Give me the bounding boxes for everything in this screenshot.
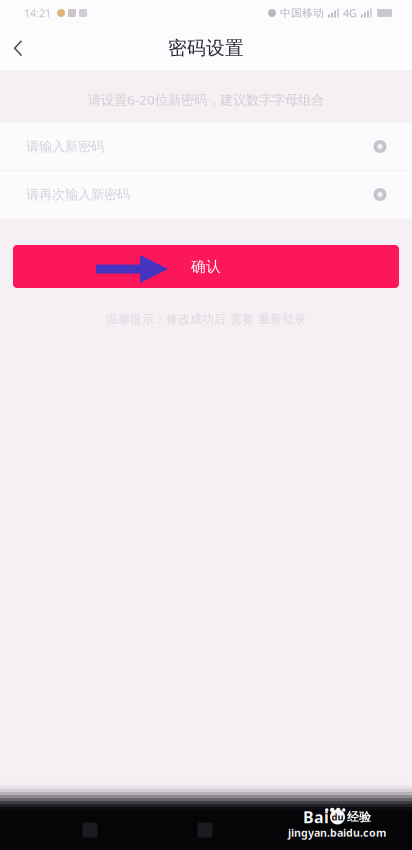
staticText: du [331, 811, 343, 823]
staticText: 请再次输入新密码 [26, 186, 130, 203]
button[interactable]: 主屏幕 [181, 810, 229, 850]
staticText: 14:21 [24, 6, 51, 20]
staticText: 请设置6-20位新密码，建议数字字母组合 [88, 91, 324, 108]
button[interactable]: 返回 [66, 810, 114, 850]
staticText: 中国移动 [280, 6, 324, 19]
button[interactable]: 返回 [0, 26, 36, 70]
staticText: 温馨提示：修改成功后 需要 重新登录 [106, 312, 306, 327]
staticText: 经验 [347, 810, 371, 824]
button[interactable]: 显示密码 [364, 130, 396, 162]
staticText: 确认 [191, 257, 221, 275]
staticText: 密码设置 [168, 36, 244, 59]
staticText: 4G [343, 6, 357, 20]
staticText: jingyan.baidu.com [288, 825, 386, 840]
button[interactable]: 显示密码 [364, 178, 396, 210]
staticText: Bai [303, 806, 329, 828]
button[interactable]: 确认 [13, 245, 399, 288]
staticText: 请输入新密码 [26, 138, 104, 155]
